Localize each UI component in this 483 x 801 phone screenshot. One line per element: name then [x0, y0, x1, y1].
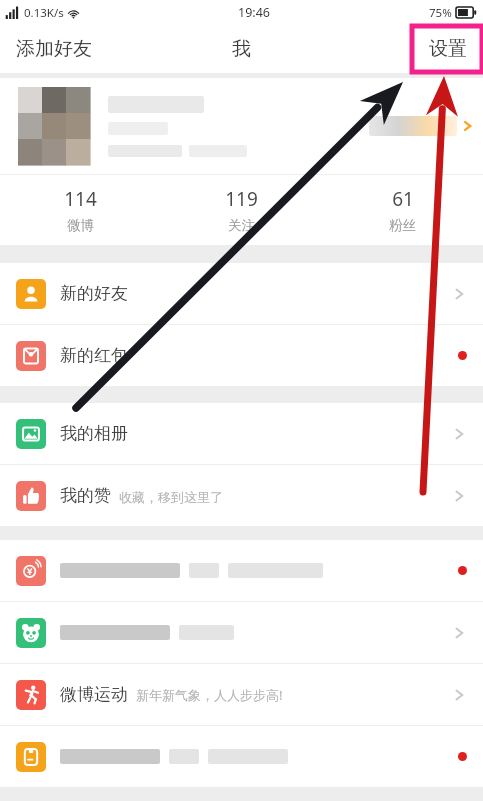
button[interactable]: 设置 — [417, 29, 483, 69]
staticText: 新年新气象，人人步步高! — [136, 686, 283, 704]
staticText: 19:46 — [238, 4, 270, 21]
button[interactable]: 114 — [0, 180, 161, 240]
staticText: 61 — [392, 186, 414, 212]
staticText: 75% — [429, 5, 452, 21]
staticText: 收藏，移到这里了 — [119, 489, 223, 505]
staticText: 我 — [232, 37, 251, 61]
button[interactable] — [0, 540, 483, 601]
button[interactable]: 新的好友 — [0, 263, 483, 324]
staticText: 添加好友 — [16, 37, 92, 61]
button[interactable]: 添加好友 — [0, 29, 104, 69]
staticText: 微博 — [67, 217, 94, 234]
staticText: 114 — [64, 186, 97, 212]
staticText: 关注 — [228, 217, 255, 234]
staticText: 设置 — [429, 37, 467, 61]
button[interactable]: 我的赞 — [0, 465, 483, 526]
button[interactable]: 微博运动 — [0, 664, 483, 725]
button[interactable]: 61 — [322, 180, 483, 240]
staticText: 我的赞 — [60, 485, 111, 506]
staticText: 新的好友 — [60, 283, 128, 304]
button[interactable]: 新的红包 — [0, 325, 483, 386]
button[interactable] — [0, 78, 483, 174]
staticText: 微博运动 — [60, 684, 128, 705]
button[interactable] — [0, 602, 483, 663]
button[interactable]: 我的相册 — [0, 403, 483, 464]
button[interactable]: 119 — [161, 180, 322, 240]
staticText: 粉丝 — [389, 217, 416, 234]
button[interactable] — [0, 726, 483, 787]
staticText: 119 — [225, 186, 258, 212]
staticText: 我的相册 — [60, 423, 128, 444]
staticText: 0.13K/s — [24, 5, 64, 21]
staticText: 新的红包 — [60, 345, 128, 366]
